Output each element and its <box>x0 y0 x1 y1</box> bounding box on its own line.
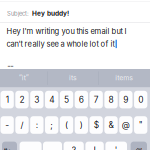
staticText: ! <box>94 145 96 150</box>
button[interactable]: ! <box>85 142 104 150</box>
button[interactable]: @ <box>119 116 132 134</box>
staticText: 2 <box>19 94 24 105</box>
staticText: Subject: <box>7 10 29 17</box>
button[interactable]: 6 <box>75 91 88 108</box>
button[interactable]: 9 <box>119 91 132 108</box>
staticText: 0 <box>138 94 143 105</box>
button[interactable]: ) <box>75 116 88 134</box>
button[interactable]: Subject: <box>0 2 150 22</box>
button[interactable]: ( <box>60 116 73 134</box>
staticText: ' <box>115 145 118 150</box>
button[interactable]: its <box>48 69 98 87</box>
button[interactable]: 5 <box>60 91 73 108</box>
staticText: 6 <box>79 94 84 105</box>
button[interactable]: 3 <box>30 91 43 108</box>
button[interactable]: & <box>104 116 118 134</box>
button[interactable]: 4 <box>45 91 58 108</box>
button[interactable]: 7 <box>89 91 103 108</box>
staticText: ) <box>80 120 83 130</box>
staticText: 5 <box>64 94 69 105</box>
button[interactable]: #+= <box>2 142 17 150</box>
staticText: 8 <box>108 94 113 105</box>
staticText: can't really see a whole lot of it <box>6 39 114 48</box>
staticText: ( <box>65 120 68 130</box>
button[interactable]: : <box>30 116 43 134</box>
button[interactable]: “it” <box>0 69 49 87</box>
staticText: - <box>5 120 9 130</box>
staticText: 7 <box>94 94 99 105</box>
staticText: & <box>108 120 113 130</box>
button[interactable]: ' <box>105 142 127 150</box>
staticText: -- <box>7 61 13 70</box>
staticText: “it” <box>19 74 29 82</box>
button[interactable]: $ <box>89 116 103 134</box>
button[interactable]: " <box>134 116 147 134</box>
staticText: 3 <box>34 94 39 105</box>
staticText: #+= <box>3 147 15 150</box>
button[interactable]: items <box>99 69 149 87</box>
button[interactable]: ; <box>45 116 58 134</box>
staticText: items <box>115 74 133 82</box>
button[interactable]: 2 <box>15 91 29 108</box>
staticText: / <box>20 120 23 130</box>
button[interactable]: 1 <box>0 91 14 108</box>
staticText: $ <box>94 120 99 130</box>
staticText: @ <box>122 120 130 130</box>
button[interactable]: ⌫ <box>131 142 147 150</box>
button[interactable]: . <box>20 142 42 150</box>
button[interactable]: / <box>15 116 29 134</box>
staticText: Hey buddy! <box>32 9 69 17</box>
staticText: its <box>69 74 77 82</box>
button[interactable]: - <box>0 116 14 134</box>
staticText: 1 <box>6 94 9 105</box>
button[interactable]: 0 <box>134 91 147 108</box>
staticText: ? <box>72 145 76 150</box>
button[interactable]: , <box>43 142 62 150</box>
staticText: 4 <box>49 94 54 105</box>
button[interactable]: ? <box>64 142 84 150</box>
staticText: ; <box>50 120 53 130</box>
staticText: Hey I'm writing you this email but I <box>6 27 126 36</box>
button[interactable]: 8 <box>104 91 118 108</box>
staticText: : <box>36 120 38 130</box>
staticText: ⌫ <box>135 147 142 150</box>
staticText: 9 <box>123 94 128 105</box>
staticText: " <box>139 120 143 130</box>
